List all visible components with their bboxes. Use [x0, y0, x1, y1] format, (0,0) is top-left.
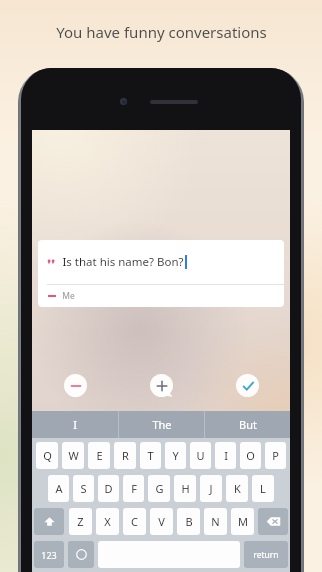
staticText: J	[209, 481, 213, 496]
button[interactable]: The	[119, 411, 204, 438]
button[interactable]: I	[215, 442, 236, 469]
button[interactable]: P	[265, 442, 286, 469]
button[interactable]: X	[96, 508, 119, 535]
staticText: Z	[77, 514, 84, 529]
button[interactable]: Backspace	[258, 508, 288, 535]
staticText: A	[55, 481, 63, 496]
button[interactable]: Q	[36, 442, 58, 469]
staticText: Is that his name? Bon?	[62, 254, 184, 270]
staticText: Y	[172, 448, 179, 463]
button[interactable]: Numbers	[34, 541, 64, 568]
button[interactable]: Y	[165, 442, 186, 469]
staticText: Q	[43, 448, 52, 463]
staticText: return	[253, 549, 279, 561]
staticText: F	[131, 481, 137, 496]
staticText: X	[104, 514, 111, 529]
staticText: O	[246, 448, 255, 463]
button[interactable]: I	[32, 411, 118, 438]
button[interactable]: G	[148, 475, 170, 502]
button[interactable]: Shift	[34, 508, 64, 535]
button[interactable]: O	[240, 442, 261, 469]
button[interactable]: R	[114, 442, 136, 469]
staticText: P	[272, 448, 279, 463]
staticText: N	[211, 514, 220, 529]
staticText: R	[122, 448, 129, 463]
staticText: I	[224, 448, 228, 463]
staticText: K	[234, 481, 241, 496]
staticText: S	[80, 481, 87, 496]
button[interactable]: Confirm	[236, 374, 259, 397]
staticText: You have funny conversations	[56, 22, 267, 42]
button[interactable]: N	[204, 508, 227, 535]
button[interactable]: L	[252, 475, 274, 502]
button[interactable]: S	[73, 475, 94, 502]
button[interactable]: H	[174, 475, 196, 502]
staticText: But	[239, 417, 257, 432]
button[interactable]: Return	[244, 541, 288, 568]
button[interactable]: W	[62, 442, 84, 469]
staticText: G	[155, 481, 164, 496]
button[interactable]: Z	[69, 508, 92, 535]
button[interactable]: Emoji	[68, 541, 94, 568]
button[interactable]: But	[205, 411, 290, 438]
button[interactable]: Add line	[150, 374, 173, 397]
staticText: The	[152, 417, 172, 432]
button[interactable]: A	[48, 475, 69, 502]
button[interactable]: V	[150, 508, 173, 535]
staticText: B	[185, 514, 193, 529]
button[interactable]: E	[88, 442, 110, 469]
staticText: W	[68, 448, 79, 463]
staticText: U	[196, 448, 205, 463]
staticText: D	[104, 481, 113, 496]
button[interactable]: F	[123, 475, 144, 502]
staticText: M	[238, 514, 248, 529]
staticText: I	[73, 417, 77, 432]
button[interactable]: Is that his name? Bon?	[38, 240, 284, 307]
staticText: C	[131, 514, 138, 529]
button[interactable]: B	[177, 508, 200, 535]
staticText: H	[181, 481, 190, 496]
staticText: E	[96, 448, 103, 463]
staticText: V	[158, 514, 165, 529]
staticText: 123	[41, 549, 57, 561]
staticText: Me	[62, 290, 75, 302]
staticText: T	[147, 448, 154, 463]
button[interactable]: T	[140, 442, 161, 469]
button[interactable]: U	[190, 442, 211, 469]
button[interactable]: Remove line	[64, 374, 87, 397]
button[interactable]: K	[226, 475, 248, 502]
button[interactable]: D	[98, 475, 119, 502]
button[interactable]: M	[231, 508, 254, 535]
button[interactable]: J	[200, 475, 222, 502]
button[interactable]: C	[123, 508, 146, 535]
staticText: L	[260, 481, 266, 496]
